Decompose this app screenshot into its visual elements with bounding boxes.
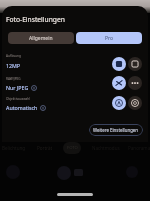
- staticText: Pro: [105, 35, 114, 42]
- staticText: FOTO: [67, 145, 78, 151]
- button[interactable]: Automatisch: [6, 104, 46, 111]
- staticText: Belichtung: [2, 145, 26, 151]
- button[interactable]: Porträt: [37, 145, 53, 151]
- staticText: Nachtmodus: [92, 145, 120, 151]
- button[interactable]: Switch camera: [126, 166, 138, 178]
- staticText: Porträt: [37, 145, 53, 151]
- button[interactable]: Pro: [76, 32, 142, 44]
- button[interactable]: Weitere Einstellungen: [89, 124, 143, 136]
- button[interactable]: Belichtung: [2, 145, 26, 151]
- staticText: RAW/JPEG: [6, 77, 21, 81]
- staticText: Automatisch: [6, 104, 38, 111]
- staticText: Nur JPEG: [6, 84, 29, 91]
- button[interactable]: Option 3 selected: [112, 96, 126, 110]
- button[interactable]: Panorama: [128, 145, 150, 151]
- button[interactable]: FOTO: [63, 142, 81, 154]
- staticText: Weitere Einstellungen: [93, 127, 139, 133]
- button[interactable]: Nur JPEG: [6, 84, 37, 91]
- button[interactable]: Option 3 alternate: [128, 96, 142, 110]
- button[interactable]: Gallery: [6, 165, 20, 179]
- staticText: 12MP: [6, 62, 21, 69]
- staticText: Foto-Einstellungen: [6, 15, 65, 24]
- button[interactable]: Nachtmodus: [92, 145, 120, 151]
- button[interactable]: Shutter: [57, 166, 71, 180]
- button[interactable]: 12MP: [6, 62, 21, 69]
- button[interactable]: Option 2 selected: [112, 76, 126, 90]
- staticText: Objektivauswahl: [6, 97, 31, 101]
- staticText: Panorama: [128, 145, 150, 151]
- button[interactable]: Option 2 alternate: [128, 76, 142, 90]
- button[interactable]: Option 1 alternate: [128, 57, 142, 71]
- button[interactable]: Allgemein: [8, 32, 74, 44]
- staticText: Auflösung: [6, 54, 21, 58]
- button[interactable]: Option 1 selected: [112, 57, 126, 71]
- staticText: Allgemein: [29, 35, 53, 42]
